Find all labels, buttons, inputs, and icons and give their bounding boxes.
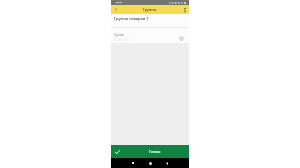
button[interactable]: More options <box>180 5 189 14</box>
staticText: Готово <box>149 149 161 154</box>
button[interactable]: Recents <box>126 158 140 168</box>
button[interactable]: Back <box>160 158 174 168</box>
button[interactable]: Готово <box>111 145 189 158</box>
button[interactable]: Back <box>111 5 120 14</box>
staticText: Группы <box>143 7 157 12</box>
button[interactable]: Select group <box>178 35 185 42</box>
staticText: Группа товаров 1 <box>114 16 149 21</box>
button[interactable]: Home <box>143 158 157 168</box>
staticText: Выберите <box>114 38 130 42</box>
staticText: Группа <box>114 33 125 37</box>
